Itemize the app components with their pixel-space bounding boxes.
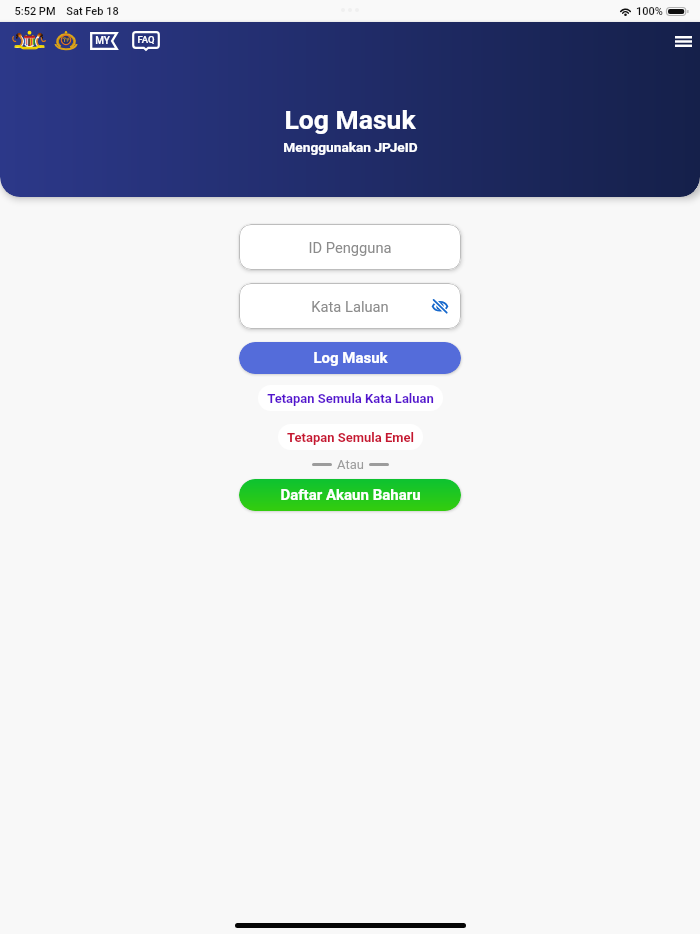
button[interactable]: Kata Laluan (239, 283, 461, 329)
staticText: Menggunakan JPJeID (283, 139, 418, 155)
button[interactable]: Daftar Akaun Baharu (239, 479, 461, 511)
staticText: Tetapan Semula Emel (287, 430, 414, 445)
staticText: Kata Laluan (311, 298, 389, 315)
staticText: Log Masuk (284, 104, 416, 135)
staticText: Atau (337, 457, 364, 472)
staticText: ID Pengguna (308, 239, 392, 256)
staticText: 5:52 PM (14, 5, 56, 18)
staticText: Log Masuk (313, 349, 388, 367)
button[interactable]: ID Pengguna (239, 224, 461, 270)
button[interactable]: Show password (429, 295, 451, 317)
staticText: Daftar Akaun Baharu (280, 486, 421, 504)
button[interactable]: Tetapan Semula Kata Laluan (258, 385, 443, 411)
staticText: Tetapan Semula Kata Laluan (267, 391, 434, 406)
button[interactable]: Tetapan Semula Emel (278, 424, 423, 450)
staticText: 100% (636, 5, 663, 18)
button[interactable]: Log Masuk (239, 342, 461, 374)
staticText: Sat Feb 18 (66, 5, 119, 18)
staticText: FAQ (137, 34, 155, 45)
button[interactable]: Open navigation menu (670, 28, 696, 54)
staticText: MY (95, 35, 110, 47)
